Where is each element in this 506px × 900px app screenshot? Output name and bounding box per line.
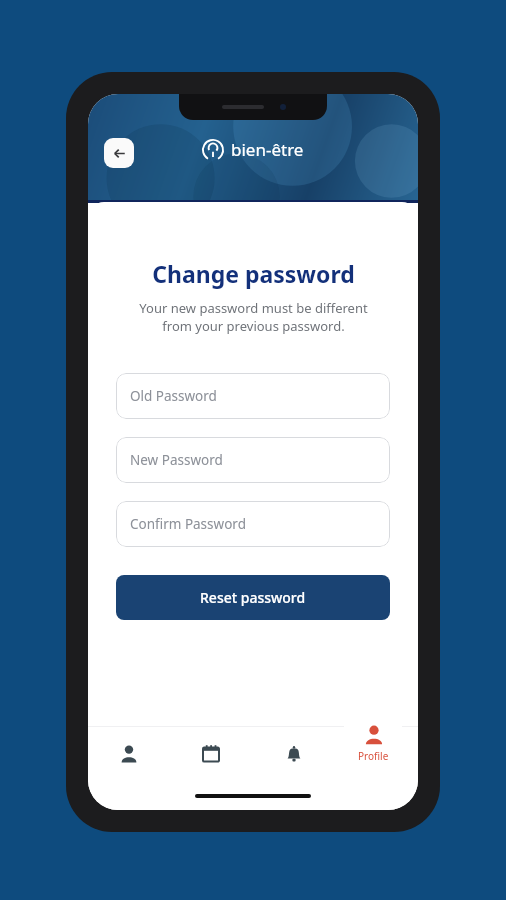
button[interactable]: Back (104, 138, 134, 168)
button[interactable]: Profile (344, 714, 402, 772)
staticText: Change password (152, 258, 355, 289)
button[interactable]: Contacts (88, 726, 170, 782)
button[interactable]: Reset password (116, 575, 390, 620)
staticText: Reset password (200, 588, 306, 607)
button[interactable]: Old Password (116, 373, 390, 419)
staticText: Confirm Password (130, 515, 246, 533)
button[interactable]: Notifications (252, 726, 335, 782)
button[interactable]: New Password (116, 437, 390, 483)
button[interactable]: Confirm Password (116, 501, 390, 547)
button[interactable]: Calendar (170, 726, 252, 782)
staticText: New Password (130, 451, 223, 469)
staticText: Your new password must be different from… (139, 299, 368, 335)
staticText: bien-être (231, 138, 304, 161)
staticText: Old Password (130, 387, 217, 405)
staticText: Profile (358, 749, 389, 763)
